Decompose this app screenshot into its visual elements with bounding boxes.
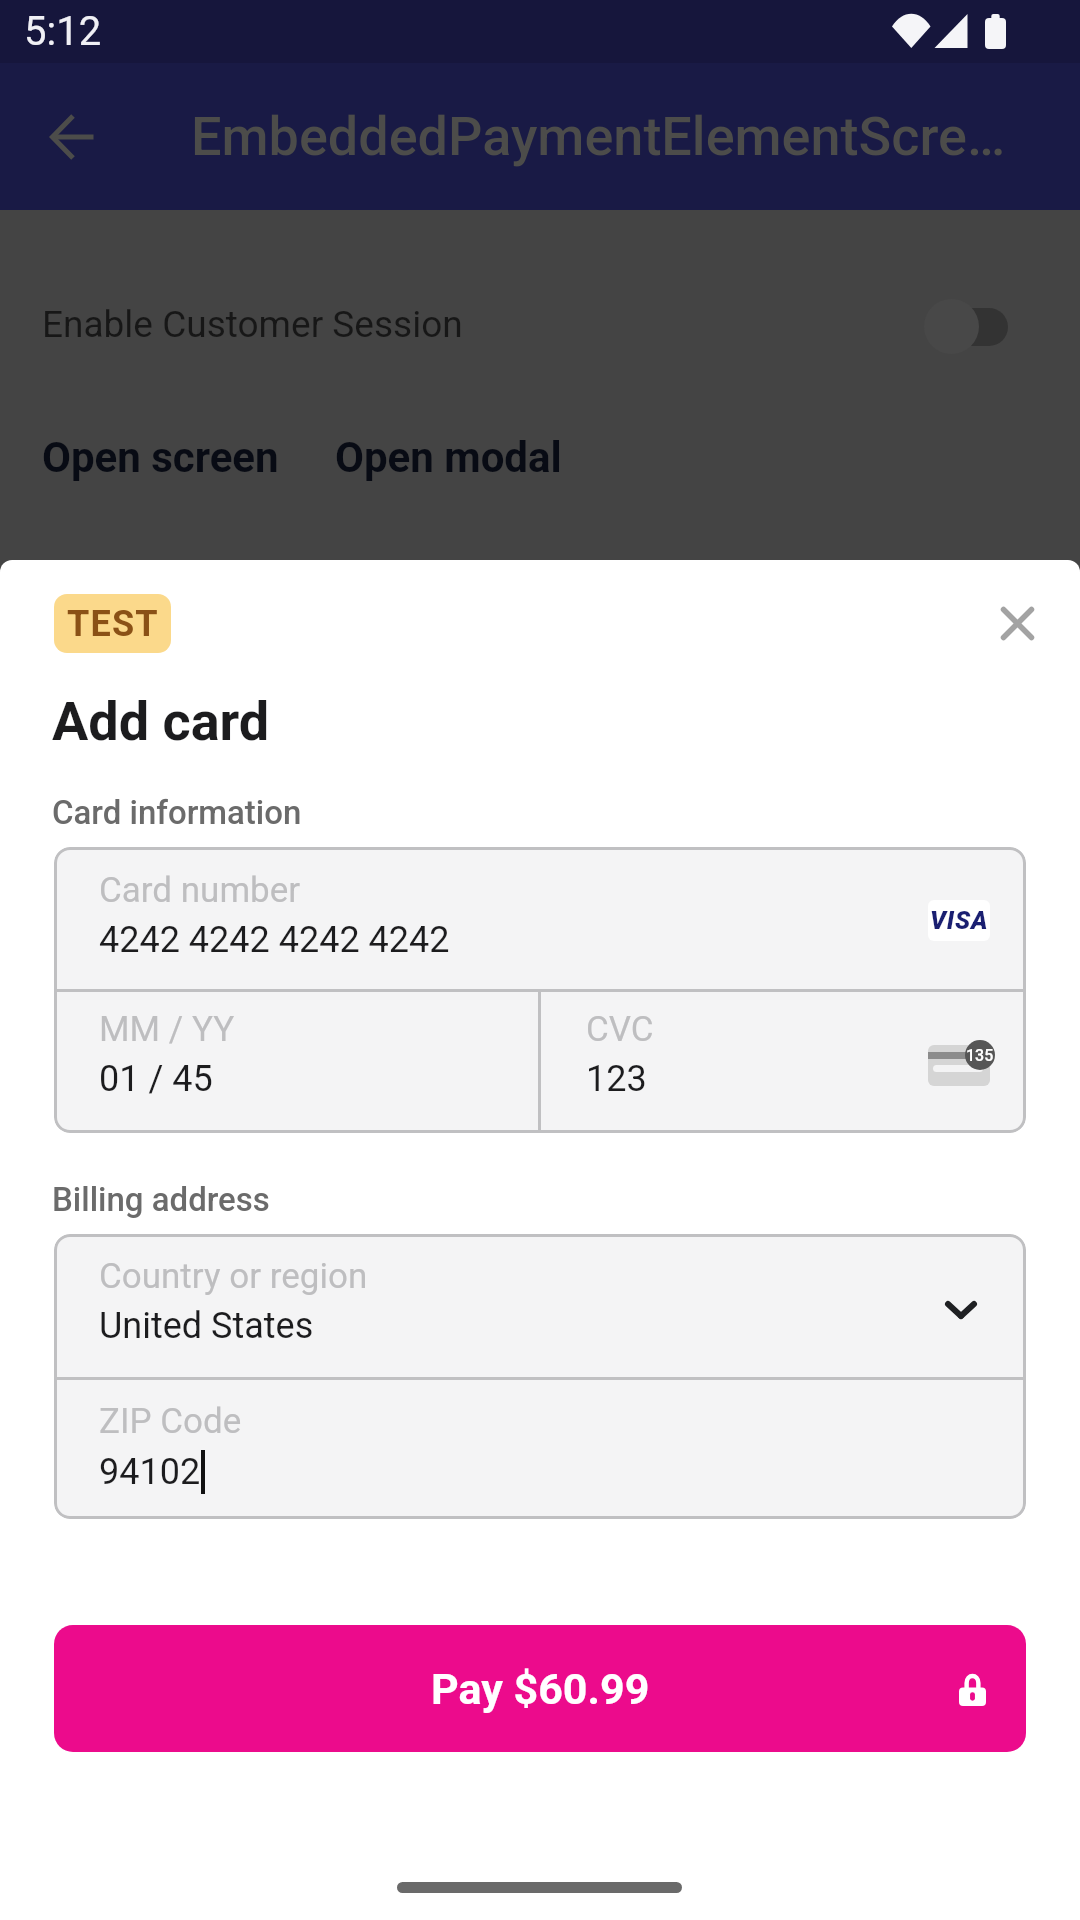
staticText: TEST	[67, 603, 159, 645]
staticText: United States	[99, 1305, 314, 1347]
staticText: Billing address	[52, 1180, 270, 1219]
button[interactable]: Back	[28, 92, 118, 182]
staticText: Pay $60.99	[431, 1664, 650, 1714]
staticText: Country or region	[99, 1256, 368, 1297]
button[interactable]: MM / YY	[54, 992, 538, 1133]
button[interactable]: TEST	[54, 594, 171, 653]
staticText: 135	[966, 1046, 994, 1065]
button[interactable]: Enable Customer Session toggle	[924, 299, 1008, 354]
staticText: 01 / 45	[99, 1058, 213, 1100]
button[interactable]: Close	[977, 583, 1057, 663]
button[interactable]: ZIP Code	[54, 1380, 1026, 1519]
button[interactable]: Open screen	[42, 433, 279, 482]
staticText: Add card	[52, 690, 270, 753]
button[interactable]: Country or region	[54, 1234, 1026, 1377]
button[interactable]: Enable Customer Session	[42, 303, 463, 346]
staticText: Card information	[52, 793, 302, 832]
staticText: Open modal	[335, 433, 562, 482]
staticText: Open screen	[42, 433, 279, 482]
staticText: EmbeddedPaymentElementScre…	[191, 105, 1006, 168]
button[interactable]: Card number	[54, 847, 1026, 989]
staticText: CVC	[586, 1009, 654, 1050]
staticText: Card number	[99, 870, 301, 911]
staticText: MM / YY	[99, 1009, 235, 1050]
button[interactable]: CVC	[541, 992, 1026, 1133]
staticText: 123	[586, 1058, 647, 1100]
button[interactable]: Open modal	[335, 433, 562, 482]
staticText: VISA	[930, 906, 989, 935]
staticText: 5:12	[24, 8, 102, 55]
staticText: ZIP Code	[99, 1401, 242, 1442]
button[interactable]: Pay $60.99	[54, 1625, 1026, 1752]
staticText: 94102	[99, 1451, 201, 1493]
staticText: 4242 4242 4242 4242	[99, 919, 450, 961]
